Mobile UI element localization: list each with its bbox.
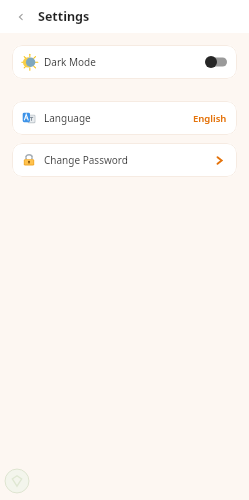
button[interactable]: Change Password — [211, 152, 227, 168]
button[interactable]: Change Password — [12, 143, 237, 177]
staticText: English — [193, 112, 227, 125]
button[interactable]: Dark Mode — [12, 45, 237, 79]
staticText: Language — [44, 111, 91, 125]
button[interactable]: Back — [12, 8, 30, 26]
staticText: Settings — [38, 8, 90, 25]
staticText: Dark Mode — [44, 55, 96, 69]
button[interactable]: Language — [12, 101, 237, 135]
staticText: Change Password — [44, 153, 128, 167]
button[interactable]: Dark Mode toggle — [205, 56, 227, 68]
